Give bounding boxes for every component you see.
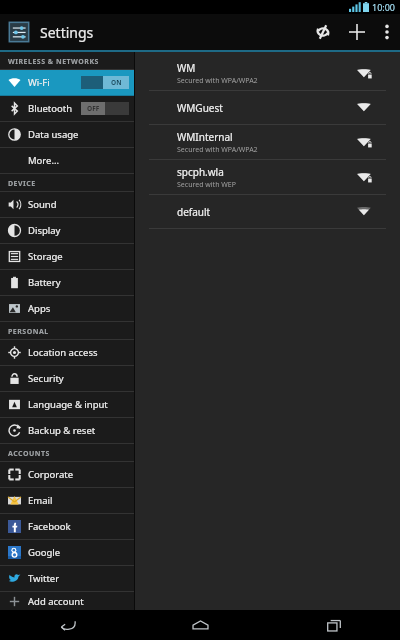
button[interactable]: Backup & reset <box>0 418 134 443</box>
staticText: WIRELESS & NETWORKS <box>8 57 99 67</box>
button[interactable]: Email <box>0 488 134 513</box>
button[interactable]: Wi-Fi <box>0 70 134 95</box>
button[interactable]: ON <box>81 76 129 89</box>
staticText: Secured with WPA/WPA2 <box>177 145 258 155</box>
button[interactable]: Display <box>0 218 134 243</box>
button[interactable]: Facebook <box>0 514 134 539</box>
button[interactable]: Sound <box>0 192 134 217</box>
button[interactable]: More options <box>374 14 400 50</box>
button[interactable]: Corporate <box>0 462 134 487</box>
staticText: Battery <box>28 276 61 289</box>
button[interactable]: WM <box>135 56 400 91</box>
button[interactable]: Add network <box>340 14 374 50</box>
button[interactable]: Add account <box>0 592 134 610</box>
staticText: ON <box>111 78 122 87</box>
staticText: Location access <box>28 346 98 359</box>
staticText: Language & input <box>28 398 108 411</box>
button[interactable]: Location access <box>0 340 134 365</box>
staticText: Secured with WPA/WPA2 <box>177 76 258 86</box>
button[interactable]: Home <box>134 610 267 640</box>
button[interactable]: OFF <box>81 102 129 115</box>
staticText: Add account <box>28 595 84 608</box>
staticText: Storage <box>28 250 63 263</box>
button[interactable]: Language & input <box>0 392 134 417</box>
staticText: ACCOUNTS <box>8 449 50 459</box>
button[interactable]: Back <box>0 610 134 640</box>
staticText: WMGuest <box>177 101 223 115</box>
staticText: More... <box>28 154 60 167</box>
staticText: Display <box>28 224 61 237</box>
button[interactable]: WMInternal <box>135 125 400 160</box>
staticText: WMInternal <box>177 130 233 144</box>
button[interactable]: Security <box>0 366 134 391</box>
button[interactable]: WMGuest <box>135 91 400 125</box>
staticText: Wi-Fi <box>28 76 50 89</box>
staticText: WM <box>177 61 196 75</box>
staticText: Settings <box>40 23 94 42</box>
button[interactable]: Scan for networks <box>306 14 340 50</box>
staticText: spcph.wla <box>177 165 224 179</box>
button[interactable]: Google <box>0 540 134 565</box>
button[interactable]: Storage <box>0 244 134 269</box>
staticText: Twitter <box>28 572 60 585</box>
staticText: 10:00 <box>372 1 396 13</box>
staticText: PERSONAL <box>8 327 49 337</box>
button[interactable]: Data usage <box>0 122 134 147</box>
staticText: default <box>177 205 211 219</box>
button[interactable]: Recent apps <box>267 610 400 640</box>
staticText: Bluetooth <box>28 102 73 115</box>
other: Settings app icon <box>8 21 30 43</box>
button[interactable]: Battery <box>0 270 134 295</box>
staticText: Google <box>28 546 61 559</box>
button[interactable]: Apps <box>0 296 134 321</box>
button[interactable]: More... <box>0 148 134 173</box>
staticText: Corporate <box>28 468 74 481</box>
staticText: Facebook <box>28 520 71 533</box>
button[interactable]: Twitter <box>0 566 134 591</box>
staticText: DEVICE <box>8 179 36 189</box>
staticText: OFF <box>87 104 100 113</box>
staticText: Data usage <box>28 128 79 141</box>
staticText: Email <box>28 494 53 507</box>
staticText: Security <box>28 372 64 385</box>
staticText: Apps <box>28 302 51 315</box>
staticText: Sound <box>28 198 57 211</box>
button[interactable]: default <box>135 195 400 229</box>
staticText: Secured with WEP <box>177 180 236 190</box>
button[interactable]: spcph.wla <box>135 160 400 195</box>
button[interactable]: Bluetooth <box>0 96 134 121</box>
staticText: Backup & reset <box>28 424 96 437</box>
